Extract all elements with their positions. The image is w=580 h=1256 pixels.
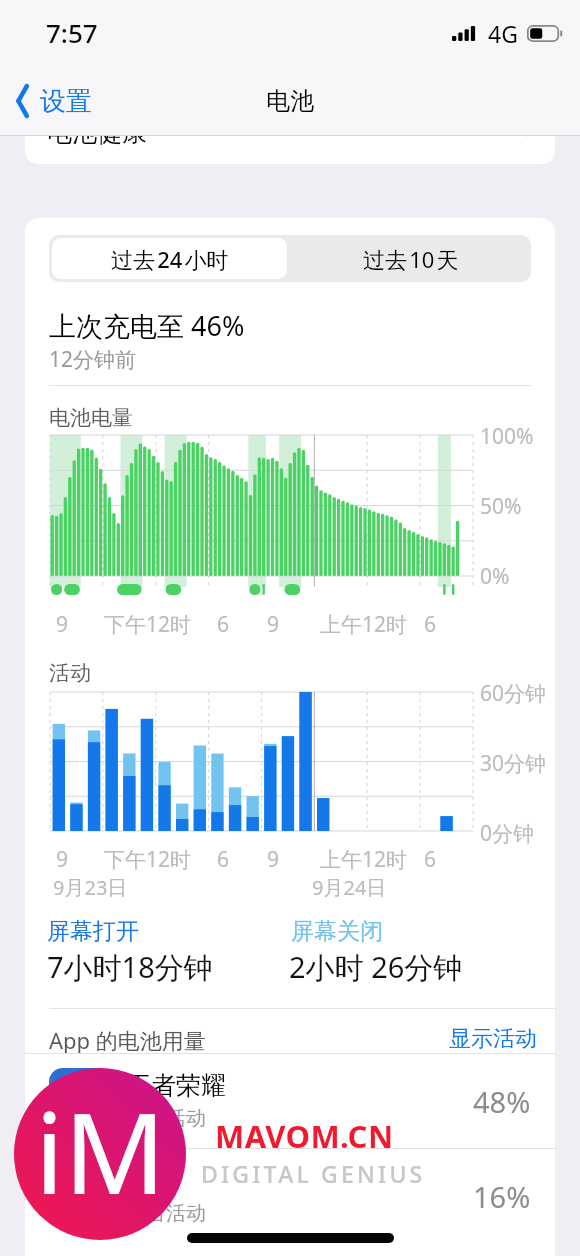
staticText: 16% [473,1177,531,1216]
staticText: 下午12时 [104,845,192,874]
staticText: 6 [217,610,230,639]
staticText: 48% [473,1082,531,1121]
button[interactable]: 王者荣耀 [25,1054,555,1149]
staticText: 屏幕打开 [47,917,139,946]
button[interactable]: 返回 [6,84,92,118]
staticText: 微信 [126,1165,176,1196]
staticText: 过去 24 小时 [111,244,229,274]
staticText: 过去 10 天 [363,244,459,274]
staticText: 9 [56,610,69,639]
staticText: MAVOM.CN [215,1115,394,1157]
button[interactable]: 过去 24 小时 [52,238,287,279]
button[interactable]: 过去 10 天 [290,235,531,282]
staticText: 7小时18分钟 [47,947,213,987]
staticText: 9 [267,845,280,874]
staticText: 上次充电至 46% [49,307,245,344]
staticText: 设置 [40,85,92,118]
staticText: 4G [488,18,518,49]
staticText: 后台活动 [126,1201,206,1226]
staticText: 9 [267,610,280,639]
staticText: 6 [424,845,437,874]
staticText: 30分钟 [480,749,547,778]
staticText: 王者荣耀 [126,1070,226,1101]
staticText: 显示活动 [449,1025,537,1053]
staticText: 6 [424,610,437,639]
button[interactable]: 显示活动 [449,1025,537,1053]
button[interactable]: 电池健康 [25,108,555,164]
staticText: DIGITAL GENIUS [201,1158,426,1189]
staticText: 电池电量 [49,405,133,431]
staticText: 后台活动 [126,1106,206,1131]
staticText: 60分钟 [480,679,547,708]
other: 返回 [6,84,32,118]
staticText: 9 [56,845,69,874]
staticText: 9月24日 [312,874,387,901]
staticText: 下午12时 [104,610,192,639]
staticText: 0分钟 [480,819,535,848]
staticText: 0% [480,562,510,591]
staticText: 7:57 [46,15,98,50]
staticText: 上午12时 [320,845,408,874]
staticText: 50% [480,492,522,521]
staticText: 6 [217,845,230,874]
staticText: 屏幕关闭 [291,917,383,946]
staticText: 活动 [49,660,91,686]
staticText: 上午12时 [320,610,408,639]
staticText: 9月23日 [53,874,128,901]
staticText: 电池健康 [47,117,147,148]
staticText: 100% [480,422,534,451]
staticText: App 的电池用量 [49,1025,206,1055]
staticText: 2小时 26分钟 [289,947,463,987]
button[interactable]: 微信 [25,1149,555,1244]
staticText: iM [35,1074,166,1227]
staticText: 12分钟前 [49,345,137,374]
staticText: 电池 [266,86,314,116]
